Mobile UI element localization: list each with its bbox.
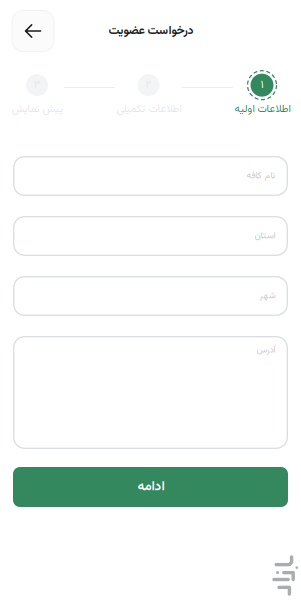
staticText: اطلاعات اولیه <box>234 101 290 118</box>
staticText: ۱ <box>260 76 263 94</box>
staticText: شهر <box>259 289 275 303</box>
staticText: پیش نمایش <box>11 101 63 118</box>
staticText: ادامه <box>137 477 164 497</box>
staticText: نام کافه <box>246 169 275 183</box>
staticText: درخواست عضویت <box>108 22 193 40</box>
staticText: ۳ <box>33 77 40 93</box>
staticText: اطلاعات تکمیلی <box>116 101 181 118</box>
button[interactable]: ادامه <box>13 467 288 507</box>
staticText: استان <box>254 229 275 243</box>
staticText: آدرس <box>256 343 275 358</box>
button[interactable]: Back <box>12 10 54 51</box>
staticText: ۲ <box>145 77 151 93</box>
